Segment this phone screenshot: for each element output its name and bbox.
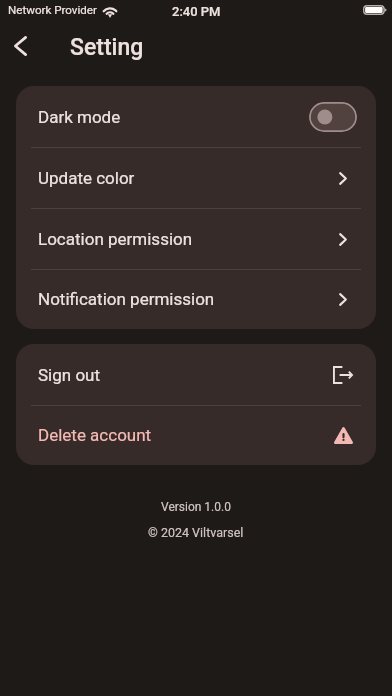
button[interactable]: Notification permission bbox=[16, 269, 376, 329]
button[interactable]: Back bbox=[0, 23, 43, 68]
staticText: © 2024 Viltvarsel bbox=[148, 525, 244, 540]
button[interactable]: Sign out bbox=[16, 344, 376, 405]
staticText: Version 1.0.0 bbox=[161, 500, 231, 514]
staticText: Dark mode bbox=[38, 107, 121, 127]
staticText: Location permission bbox=[38, 229, 193, 249]
button[interactable]: Dark mode toggle bbox=[309, 102, 357, 132]
other: Delete account warning bbox=[333, 425, 353, 445]
button[interactable]: Location permission bbox=[16, 208, 376, 269]
button[interactable]: Update color bbox=[16, 147, 376, 208]
staticText: 2:40 PM bbox=[172, 4, 221, 19]
staticText: Network Provider bbox=[8, 3, 97, 17]
staticText: Delete account bbox=[38, 425, 152, 445]
staticText: Sign out bbox=[38, 365, 101, 385]
button[interactable]: Dark mode bbox=[16, 86, 376, 147]
other: Sign out bbox=[333, 365, 353, 385]
button[interactable]: Delete account bbox=[16, 405, 376, 465]
staticText: Setting bbox=[70, 34, 144, 61]
staticText: Update color bbox=[38, 168, 135, 188]
staticText: Notification permission bbox=[38, 289, 215, 309]
